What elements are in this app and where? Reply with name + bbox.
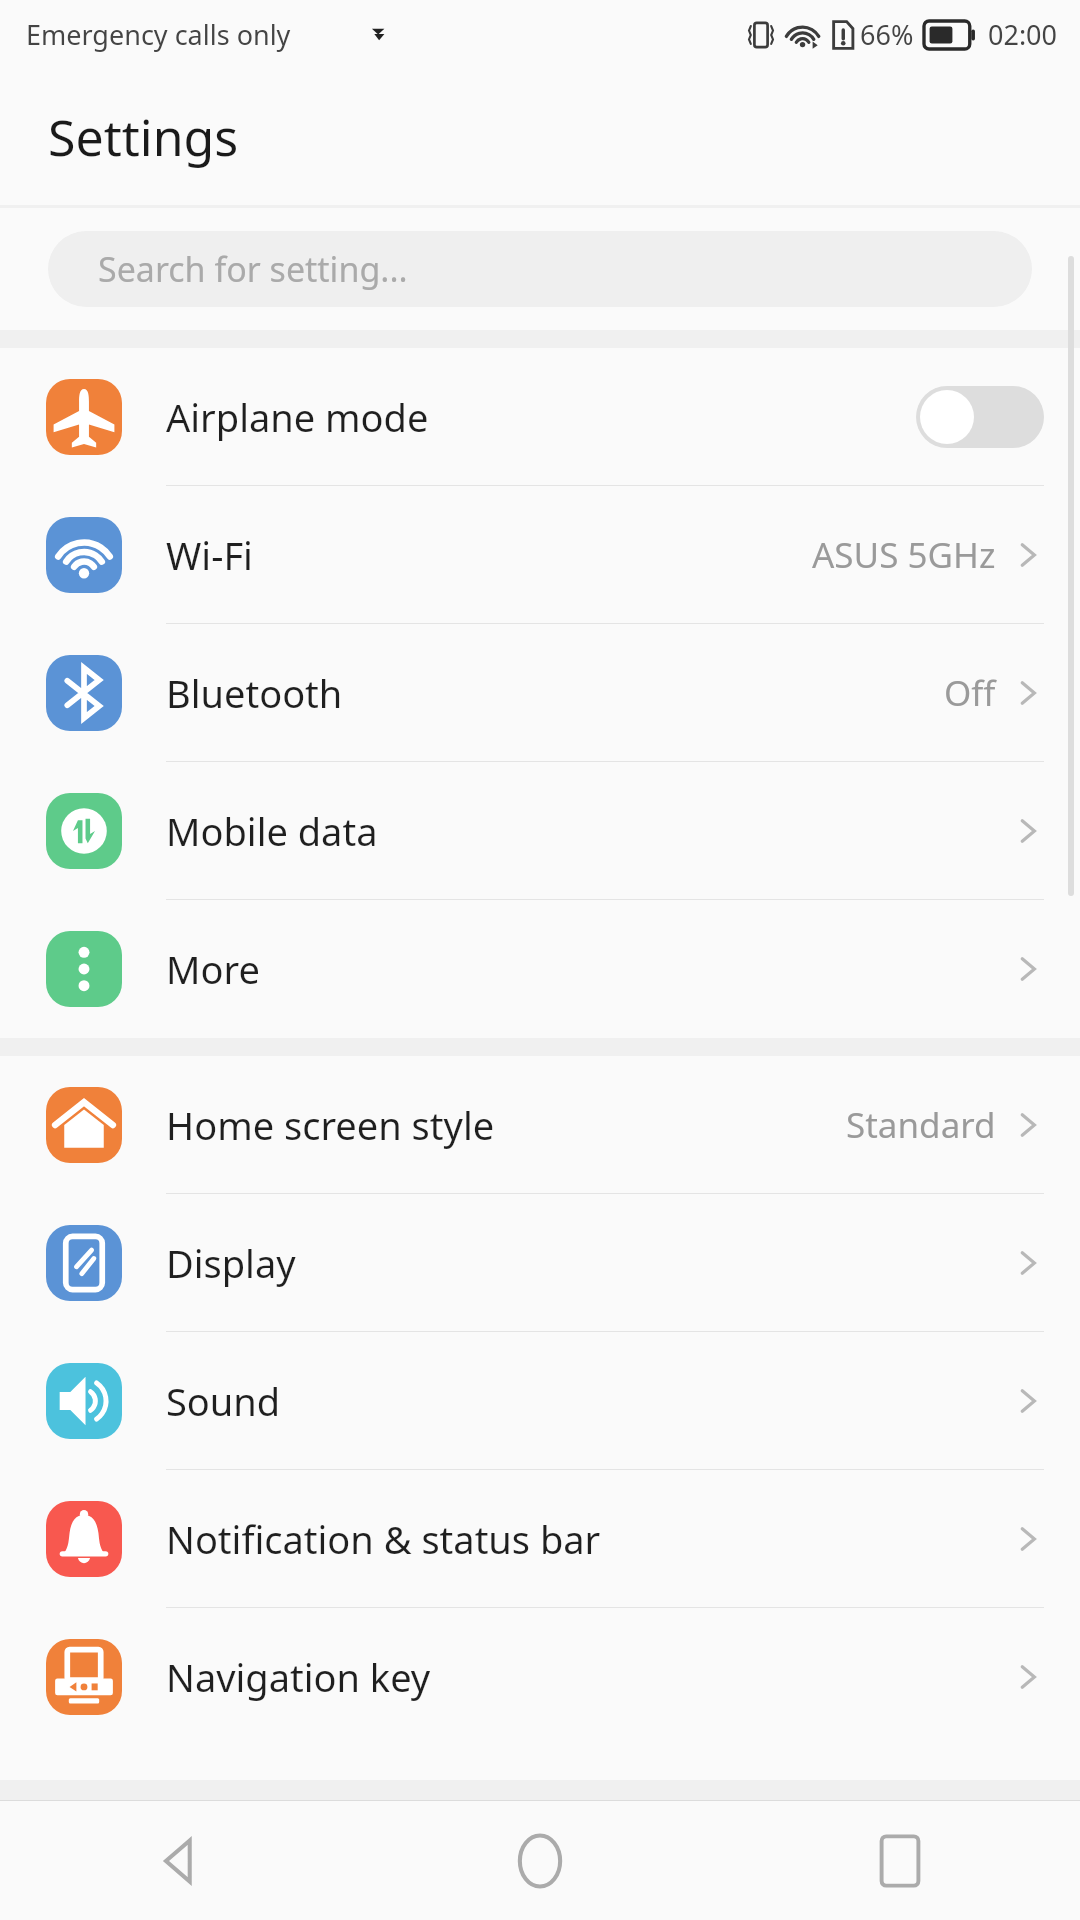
button[interactable]: Search for setting... — [48, 231, 1032, 307]
staticText: Mobile data — [166, 805, 378, 857]
button[interactable]: Wi-Fi — [0, 486, 1080, 624]
button[interactable]: Recent apps — [720, 1801, 1080, 1920]
staticText: Search for setting... — [98, 246, 408, 292]
button[interactable]: Notification & status bar — [0, 1470, 1080, 1608]
staticText: ASUS 5GHz — [812, 531, 996, 579]
staticText: Wi-Fi — [166, 529, 253, 581]
staticText: Settings — [48, 103, 239, 171]
button[interactable]: Home screen style — [0, 1056, 1080, 1194]
staticText: Off — [944, 669, 996, 717]
staticText: 66% — [860, 16, 914, 53]
button[interactable]: Mobile data — [0, 762, 1080, 900]
staticText: Emergency calls only — [26, 16, 291, 53]
staticText: Display — [166, 1237, 296, 1289]
button[interactable]: More — [0, 900, 1080, 1038]
staticText: Home screen style — [166, 1099, 495, 1151]
button[interactable]: Airplane mode — [0, 348, 1080, 486]
button[interactable]: Bluetooth — [0, 624, 1080, 762]
button[interactable]: Airplane mode toggle — [916, 386, 1044, 448]
staticText: Bluetooth — [166, 667, 343, 719]
button[interactable]: Navigation key — [0, 1608, 1080, 1746]
staticText: Airplane mode — [166, 391, 429, 443]
staticText: Navigation key — [166, 1651, 431, 1703]
button[interactable]: Back — [0, 1801, 360, 1920]
staticText: Standard — [846, 1101, 996, 1149]
button[interactable]: Home — [360, 1801, 720, 1920]
staticText: Notification & status bar — [166, 1513, 601, 1565]
staticText: Sound — [166, 1375, 281, 1427]
staticText: More — [166, 943, 260, 995]
button[interactable]: Sound — [0, 1332, 1080, 1470]
button[interactable]: Display — [0, 1194, 1080, 1332]
staticText: 02:00 — [988, 16, 1058, 53]
